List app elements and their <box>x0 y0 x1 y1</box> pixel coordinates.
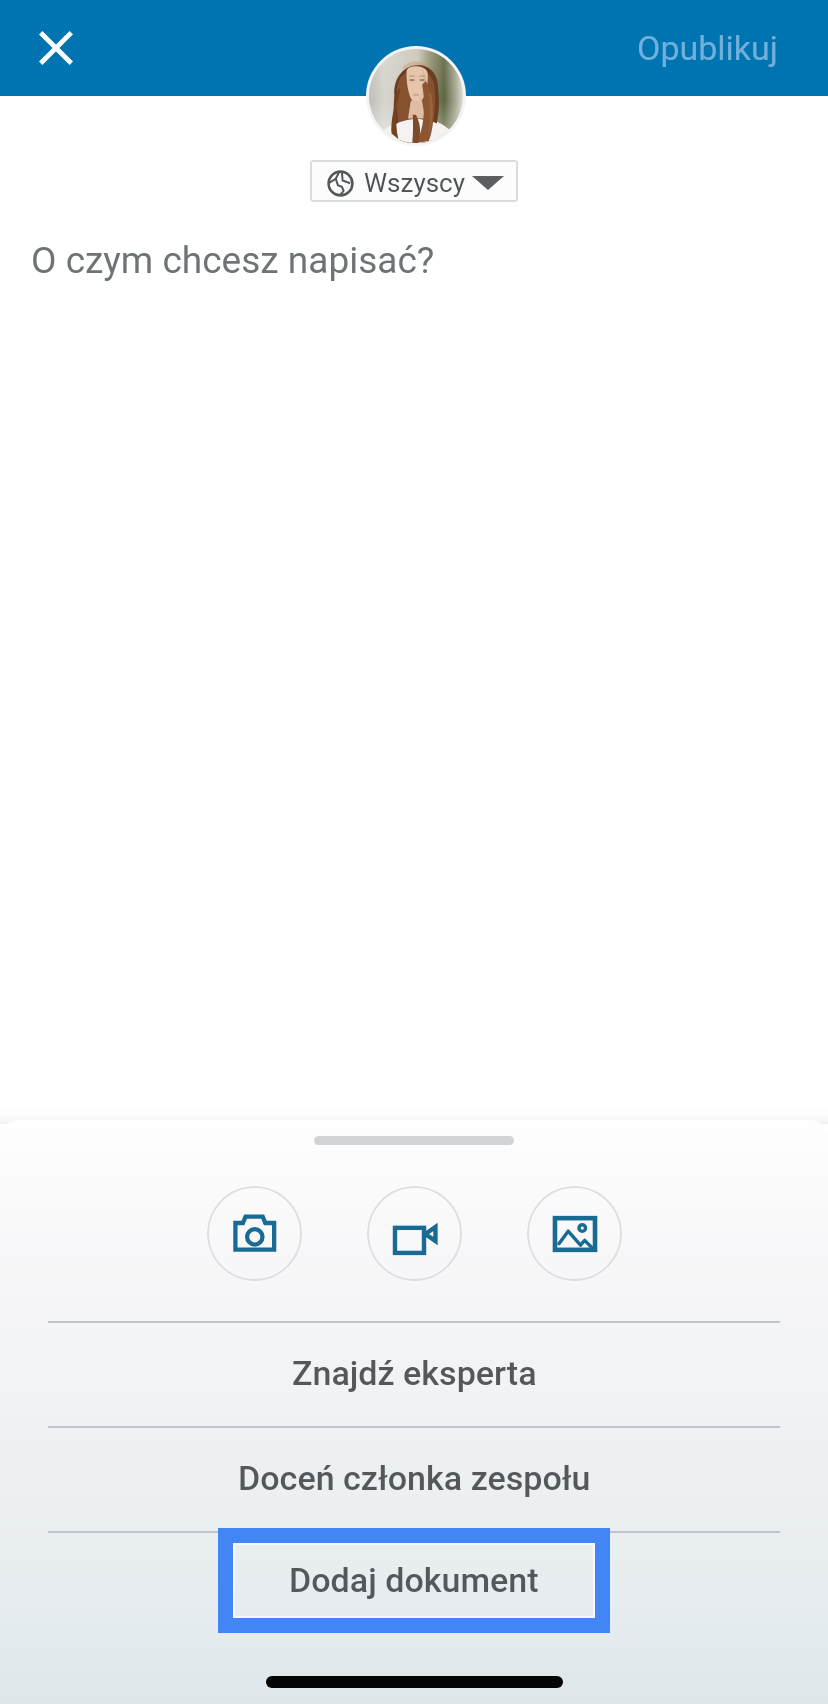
staticText: Doceń członka zespołu <box>238 1458 591 1498</box>
button[interactable]: Opublikuj <box>609 0 828 96</box>
button[interactable]: Wszyscy <box>310 160 518 202</box>
button[interactable]: Zamknij <box>24 16 88 80</box>
staticText: Znajdź eksperta <box>292 1353 537 1393</box>
button[interactable]: Znajdź eksperta <box>0 1323 828 1426</box>
staticText: Dodaj dokument <box>289 1560 539 1600</box>
button[interactable]: Doceń członka zespołu <box>0 1428 828 1531</box>
button[interactable]: Nagraj wideo <box>367 1186 462 1281</box>
button[interactable]: Dodaj dokument <box>233 1543 595 1618</box>
button[interactable]: Dodaj zdjęcie <box>527 1186 622 1281</box>
button[interactable]: Zdjęcie profilowe <box>369 49 463 143</box>
staticText: Wszyscy <box>364 168 466 198</box>
staticText: O czym chcesz napisać? <box>31 239 435 282</box>
staticText: Opublikuj <box>637 28 778 68</box>
button[interactable]: Zrób zdjęcie <box>207 1186 302 1281</box>
